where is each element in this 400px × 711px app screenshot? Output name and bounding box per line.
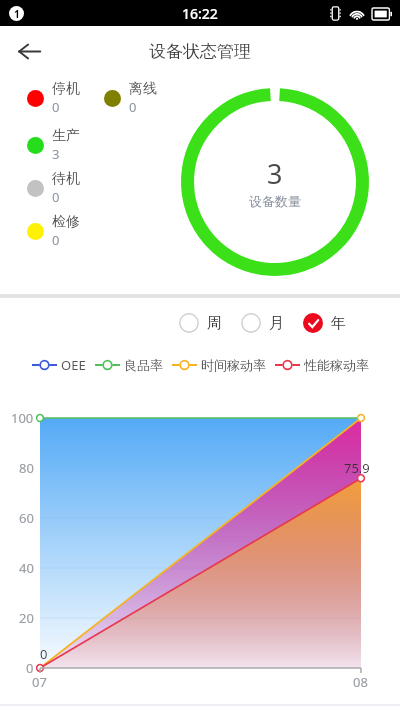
button[interactable]: 良品率 (95, 357, 163, 373)
button[interactable]: 年 (303, 313, 346, 333)
staticText: 3 (267, 155, 283, 192)
staticText: 性能稼动率 (304, 357, 369, 373)
staticText: 周 (207, 314, 222, 333)
staticText: 16:22 (182, 4, 218, 23)
staticText: 0 (26, 659, 34, 677)
button[interactable]: Back (11, 33, 47, 69)
staticText: 100 (11, 409, 34, 427)
staticText: 0 (129, 98, 137, 116)
staticText: 08 (353, 673, 368, 691)
staticText: 60 (19, 509, 34, 527)
button[interactable]: 月 (241, 313, 284, 333)
staticText: 设备数量 (249, 193, 301, 209)
button[interactable]: OEE (32, 356, 86, 374)
staticText: 月 (269, 314, 284, 333)
button[interactable]: 停机 (27, 80, 80, 116)
staticText: 0 (52, 231, 60, 249)
button[interactable]: 周 (179, 313, 222, 333)
staticText: 0 (40, 645, 48, 663)
staticText: 良品率 (124, 357, 163, 373)
staticText: 40 (19, 559, 34, 577)
staticText: 20 (19, 609, 34, 627)
staticText: 0 (52, 188, 60, 206)
staticText: 3 (52, 145, 60, 163)
button[interactable]: 时间稼动率 (172, 357, 266, 373)
staticText: 0 (52, 98, 60, 116)
staticText: 80 (19, 459, 34, 477)
button[interactable]: 检修 (27, 213, 80, 249)
button[interactable]: 待机 (27, 170, 80, 206)
staticText: 时间稼动率 (201, 357, 266, 373)
staticText: 停机 (52, 80, 80, 98)
staticText: 生产 (52, 127, 80, 145)
staticText: 07 (32, 673, 47, 691)
staticText: OEE (61, 356, 86, 374)
staticText: 1 (14, 7, 20, 21)
staticText: 设备状态管理 (149, 41, 251, 62)
staticText: 检修 (52, 213, 80, 231)
staticText: 75.9 (344, 459, 370, 477)
button[interactable]: 生产 (27, 127, 80, 163)
button[interactable]: 性能稼动率 (275, 357, 369, 373)
staticText: 离线 (129, 80, 157, 98)
staticText: 待机 (52, 170, 80, 188)
button[interactable]: 离线 (104, 80, 157, 116)
staticText: 年 (331, 314, 346, 333)
